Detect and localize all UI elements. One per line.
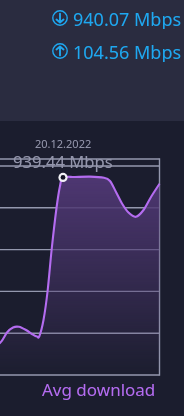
- staticText: 104.56 Mbps: [73, 40, 182, 62]
- staticText: Avg download: [42, 378, 156, 401]
- staticText: 940.07 Mbps: [73, 7, 182, 29]
- staticText: 20.12.2022: [35, 136, 92, 151]
- button[interactable]: Download speed: [0, 7, 184, 29]
- staticText: 939.44 Mbps: [13, 150, 113, 173]
- other: Upload speed: [52, 43, 68, 59]
- other: Download speed: [52, 10, 68, 26]
- button[interactable]: Upload speed: [0, 40, 184, 62]
